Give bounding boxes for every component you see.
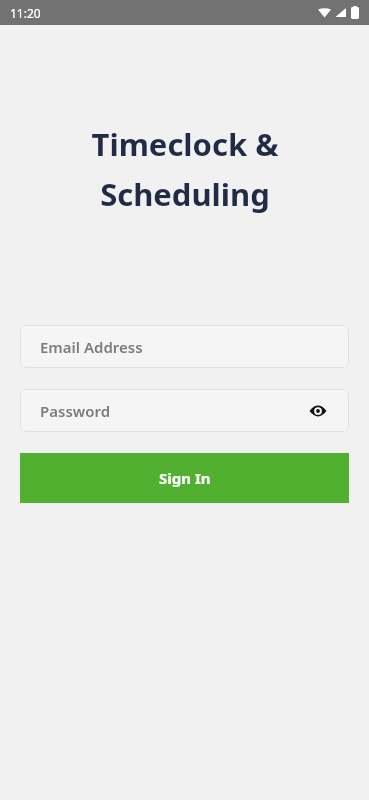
button[interactable]: Sign In [20, 453, 349, 503]
staticText: Timeclock & [91, 123, 279, 165]
button[interactable]: Password [20, 389, 349, 432]
button[interactable]: Email Address [20, 325, 349, 368]
staticText: Sign In [159, 468, 211, 488]
staticText: Email Address [40, 337, 143, 357]
button[interactable]: Show password [307, 400, 329, 422]
staticText: Scheduling [100, 173, 270, 215]
staticText: Password [40, 401, 111, 421]
staticText: 11:20 [10, 5, 41, 21]
